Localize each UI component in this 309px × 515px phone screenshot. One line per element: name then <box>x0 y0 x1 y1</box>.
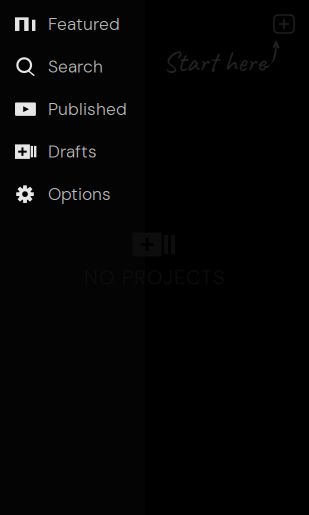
staticText: Options <box>48 183 111 205</box>
staticText: Drafts <box>48 140 97 163</box>
staticText: Published <box>48 98 127 120</box>
button[interactable]: Search <box>0 45 145 88</box>
staticText: Search <box>48 55 103 78</box>
staticText: NO PROJECTS <box>84 264 225 290</box>
button[interactable]: New project <box>268 8 300 40</box>
button[interactable]: Published <box>0 88 145 130</box>
staticText: Featured <box>48 13 120 35</box>
button[interactable]: Drafts <box>0 130 145 173</box>
staticText: Start here <box>163 44 265 79</box>
button[interactable]: Options <box>0 173 145 215</box>
button[interactable]: Featured <box>0 3 145 45</box>
